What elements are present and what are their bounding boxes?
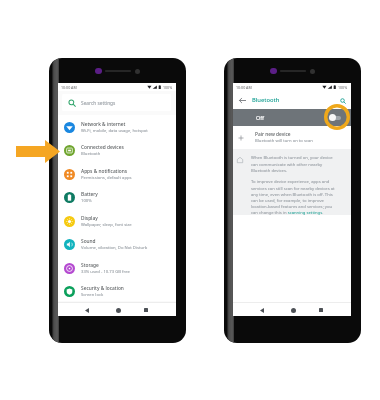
button[interactable]: Recent apps	[314, 303, 328, 317]
staticText: To improve device experience, apps and s…	[251, 179, 338, 215]
button[interactable]: Storage	[58, 257, 176, 280]
staticText: Sound	[81, 238, 96, 245]
button[interactable]: Off	[233, 109, 351, 126]
button[interactable]: Sound	[58, 233, 176, 256]
staticText: 10:00 AM	[236, 85, 252, 90]
button[interactable]: Navigate up	[237, 95, 248, 106]
staticText: When Bluetooth is turned on, your device…	[251, 155, 338, 173]
button[interactable]: Apps & notifications	[58, 163, 176, 186]
staticText: Battery	[81, 191, 98, 198]
staticText: Bluetooth will turn on to scan	[255, 138, 313, 144]
button[interactable]: Back	[80, 303, 94, 317]
button[interactable]: Back	[255, 303, 269, 317]
staticText: Search settings	[81, 100, 116, 107]
staticText: Bluetooth	[252, 96, 280, 104]
staticText: Screen lock	[81, 292, 104, 298]
staticText: 33% used - 10.73 GB free	[81, 269, 130, 275]
button[interactable]: Home	[286, 303, 300, 317]
staticText: Connected devices	[81, 144, 124, 151]
button[interactable]: Battery	[58, 186, 176, 209]
button[interactable]: Search	[337, 95, 348, 106]
staticText: Permissions, default apps	[81, 175, 132, 181]
staticText: Wi-Fi, mobile, data usage, hotspot	[81, 128, 148, 134]
staticText: Wallpaper, sleep, font size	[81, 222, 132, 228]
staticText: 100%	[81, 198, 92, 204]
button[interactable]: Display	[58, 210, 176, 233]
button[interactable]: Home	[111, 303, 125, 317]
button[interactable]: Recent apps	[139, 303, 153, 317]
button[interactable]: Connected devices	[58, 139, 176, 162]
staticText: Apps & notifications	[81, 168, 128, 175]
staticText: 10:00 AM	[61, 85, 77, 90]
staticText: Display	[81, 215, 98, 222]
button[interactable]: Pair new device	[233, 126, 351, 149]
button[interactable]: Search settings	[62, 94, 171, 111]
staticText: 100%	[338, 85, 348, 90]
staticText: Off	[256, 114, 264, 121]
staticText: Pair new device	[255, 131, 291, 138]
staticText: 100%	[163, 85, 173, 90]
staticText: Bluetooth	[81, 151, 101, 157]
button[interactable]: Network & internet	[58, 116, 176, 139]
staticText: Volume, vibration, Do Not Disturb	[81, 245, 148, 251]
button[interactable]: Security & location	[58, 280, 176, 303]
staticText: Network & internet	[81, 121, 126, 128]
staticText: Storage	[81, 262, 99, 269]
staticText: Security & location	[81, 285, 124, 292]
